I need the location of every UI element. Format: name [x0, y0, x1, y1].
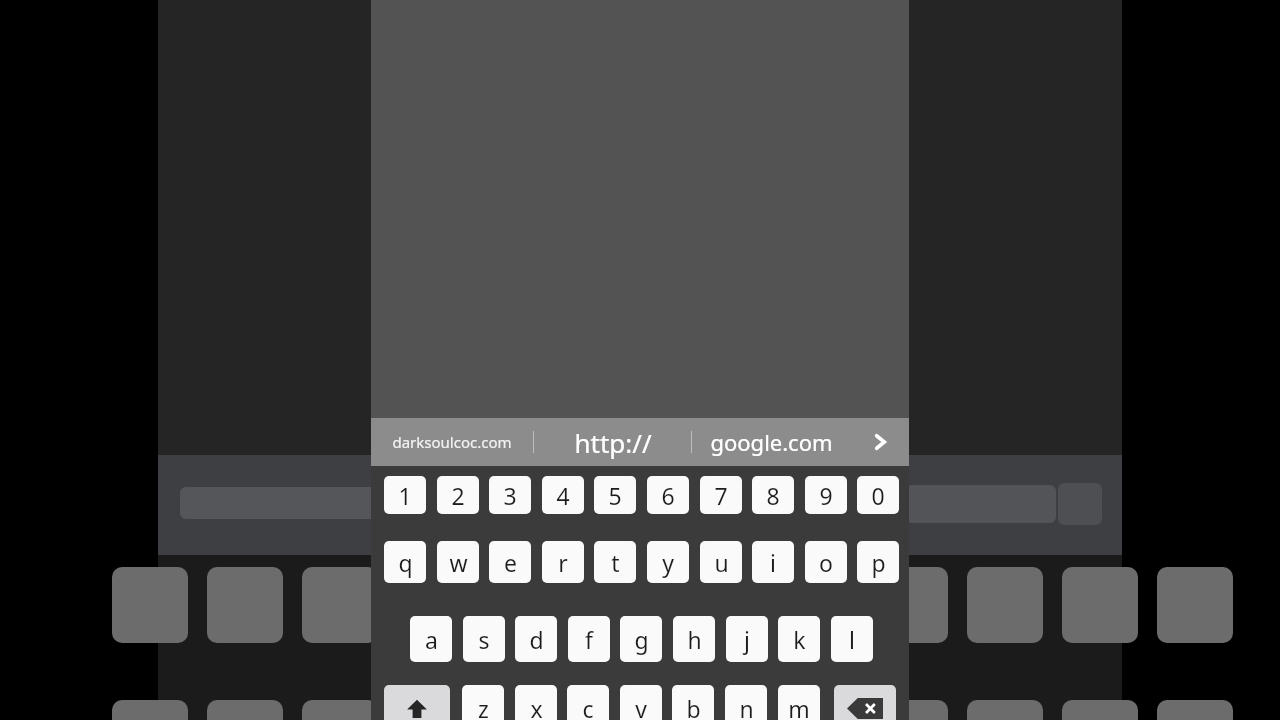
- button[interactable]: e: [489, 541, 531, 583]
- staticText: f: [585, 624, 593, 655]
- button[interactable]: o: [805, 541, 847, 583]
- staticText: 5: [608, 480, 622, 511]
- staticText: z: [478, 693, 489, 720]
- button[interactable]: k: [778, 616, 820, 662]
- staticText: n: [739, 693, 754, 720]
- staticText: l: [849, 624, 855, 655]
- button[interactable]: c: [567, 685, 609, 720]
- button[interactable]: More suggestions: [850, 418, 909, 466]
- staticText: r: [558, 547, 568, 578]
- button[interactable]: 7: [700, 476, 742, 514]
- button[interactable]: 5: [594, 476, 636, 514]
- staticText: 0: [871, 480, 885, 511]
- button[interactable]: f: [568, 616, 610, 662]
- button[interactable]: q: [384, 541, 426, 583]
- button[interactable]: http://: [534, 418, 691, 466]
- staticText: p: [871, 547, 886, 578]
- staticText: 3: [503, 480, 517, 511]
- staticText: 2: [451, 480, 465, 511]
- button[interactable]: g: [620, 616, 662, 662]
- button[interactable]: t: [594, 541, 636, 583]
- staticText: d: [529, 624, 544, 655]
- button[interactable]: w: [437, 541, 479, 583]
- button[interactable]: 4: [542, 476, 584, 514]
- button[interactable]: 8: [752, 476, 794, 514]
- staticText: darksoulcoc.com: [392, 432, 512, 452]
- staticText: http://: [574, 425, 652, 460]
- staticText: q: [398, 547, 413, 578]
- staticText: 8: [766, 480, 780, 511]
- button[interactable]: 3: [489, 476, 531, 514]
- staticText: h: [687, 624, 702, 655]
- staticText: m: [788, 693, 810, 720]
- button[interactable]: j: [726, 616, 768, 662]
- button[interactable]: 6: [647, 476, 689, 514]
- button[interactable]: v: [620, 685, 662, 720]
- button[interactable]: r: [542, 541, 584, 583]
- staticText: e: [504, 547, 517, 578]
- button[interactable]: l: [831, 616, 873, 662]
- button[interactable]: d: [515, 616, 557, 662]
- staticText: v: [635, 693, 647, 720]
- button[interactable]: 1: [384, 476, 426, 514]
- button[interactable]: Shift: [384, 685, 450, 720]
- staticText: t: [611, 547, 620, 578]
- staticText: s: [478, 624, 490, 655]
- staticText: 9: [819, 480, 833, 511]
- staticText: b: [686, 693, 701, 720]
- button[interactable]: a: [410, 616, 452, 662]
- staticText: 7: [714, 480, 728, 511]
- button[interactable]: x: [515, 685, 557, 720]
- staticText: x: [530, 693, 543, 720]
- staticText: 6: [661, 480, 675, 511]
- staticText: y: [662, 547, 674, 578]
- button[interactable]: 0: [857, 476, 899, 514]
- staticText: 4: [556, 480, 570, 511]
- staticText: google.com: [710, 427, 833, 457]
- staticText: g: [634, 624, 649, 655]
- button[interactable]: n: [725, 685, 767, 720]
- staticText: i: [770, 547, 776, 578]
- button[interactable]: s: [463, 616, 505, 662]
- button[interactable]: m: [778, 685, 820, 720]
- button[interactable]: google.com: [692, 418, 850, 466]
- button[interactable]: 2: [437, 476, 479, 514]
- staticText: 1: [398, 480, 412, 511]
- button[interactable]: i: [752, 541, 794, 583]
- button[interactable]: Backspace: [834, 685, 896, 720]
- button[interactable]: z: [462, 685, 504, 720]
- button[interactable]: y: [647, 541, 689, 583]
- staticText: u: [714, 547, 729, 578]
- staticText: j: [744, 624, 750, 655]
- button[interactable]: h: [673, 616, 715, 662]
- staticText: w: [449, 547, 468, 578]
- staticText: c: [582, 693, 594, 720]
- button[interactable]: darksoulcoc.com: [371, 418, 533, 466]
- staticText: o: [819, 547, 833, 578]
- button[interactable]: b: [672, 685, 714, 720]
- staticText: k: [793, 624, 806, 655]
- staticText: a: [425, 624, 438, 655]
- button[interactable]: 9: [805, 476, 847, 514]
- button[interactable]: u: [700, 541, 742, 583]
- button[interactable]: p: [857, 541, 899, 583]
